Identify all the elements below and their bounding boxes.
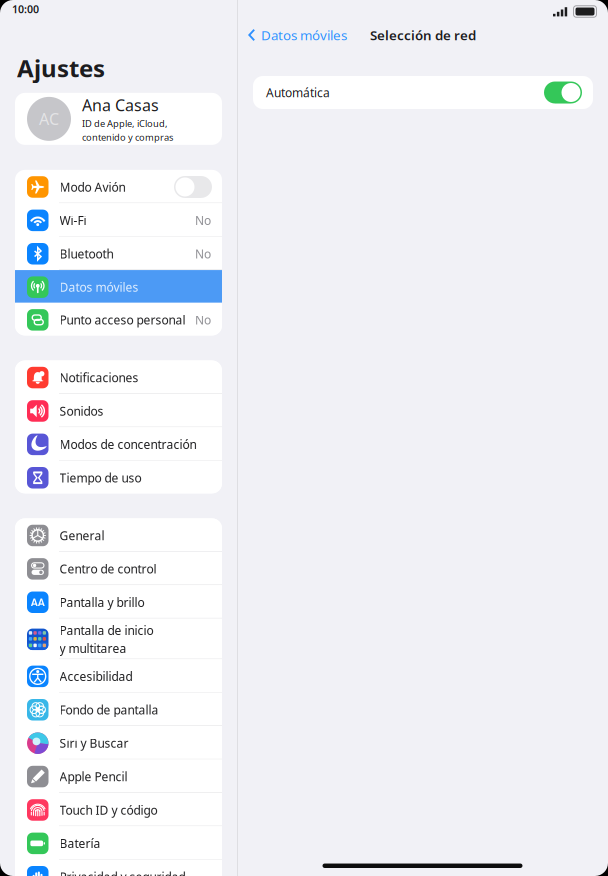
staticText: Batería (59, 835, 100, 851)
button[interactable]: Apple Pencil (15, 759, 222, 792)
staticText: Datos móviles (59, 279, 138, 295)
staticText: Siri y Buscar (59, 735, 128, 751)
staticText: AC (39, 108, 59, 129)
staticText: General (59, 527, 104, 543)
button[interactable]: Centro de control (15, 552, 222, 584)
staticText: Accesibilidad (59, 668, 132, 684)
button[interactable]: Batería (15, 826, 222, 859)
staticText: Automática (266, 84, 330, 100)
button[interactable]: Modo Avión (15, 170, 222, 203)
button[interactable]: AC (15, 93, 222, 145)
staticText: Datos móviles (261, 26, 347, 44)
button[interactable]: Wi-Fi (15, 203, 222, 236)
button[interactable]: Notificaciones (15, 360, 222, 393)
button[interactable]: Bluetooth (15, 237, 222, 269)
button[interactable]: Pantalla de inicio (15, 619, 222, 659)
staticText: Pantalla de inicio (59, 622, 153, 638)
staticText: Tiempo de uso (59, 470, 141, 486)
staticText: Modos de concentración (59, 436, 196, 452)
staticText: No (195, 246, 211, 262)
staticText: AA (31, 595, 45, 609)
staticText: Notificaciones (59, 370, 138, 385)
staticText: Modo Avión (59, 179, 125, 195)
staticText: Pantalla y brillo (59, 594, 144, 610)
button[interactable]: Automática (253, 76, 593, 109)
button[interactable]: AA (15, 585, 222, 618)
button[interactable]: Accesibilidad (15, 659, 222, 692)
staticText: Apple Pencil (59, 769, 127, 784)
button[interactable]: General (15, 518, 222, 551)
button[interactable]: Fondo de pantalla (15, 693, 222, 725)
staticText: 10:00 (12, 2, 39, 16)
staticText: Wi-Fi (59, 212, 86, 228)
staticText: Sonidos (59, 403, 103, 419)
staticText: Ana Casas (82, 94, 159, 116)
staticText: y multitarea (59, 640, 126, 656)
staticText: Bluetooth (59, 246, 113, 262)
button[interactable]: Punto acceso personal (15, 303, 222, 335)
button[interactable]: Siri y Buscar (15, 726, 222, 759)
staticText: Selección de red (370, 26, 476, 44)
button[interactable]: Tiempo de uso (15, 461, 222, 493)
staticText: Ajustes (17, 52, 105, 84)
button[interactable]: Datos móviles (238, 23, 353, 47)
staticText: No (195, 212, 211, 228)
staticText: Punto acceso personal (59, 312, 185, 328)
staticText: ID de Apple, iCloud, (82, 117, 168, 129)
staticText: contenido y compras (82, 131, 173, 143)
staticText: No (195, 312, 211, 328)
button[interactable]: Sonidos (15, 394, 222, 427)
button[interactable]: Modos de concentración (15, 427, 222, 460)
button[interactable]: Privacidad y seguridad (15, 860, 222, 876)
staticText: Privacidad y seguridad (59, 869, 185, 876)
staticText: Touch ID y código (59, 802, 157, 818)
button[interactable]: Touch ID y código (15, 793, 222, 826)
staticText: Centro de control (59, 561, 156, 577)
button[interactable]: Datos móviles (15, 270, 222, 303)
staticText: Fondo de pantalla (59, 702, 158, 718)
